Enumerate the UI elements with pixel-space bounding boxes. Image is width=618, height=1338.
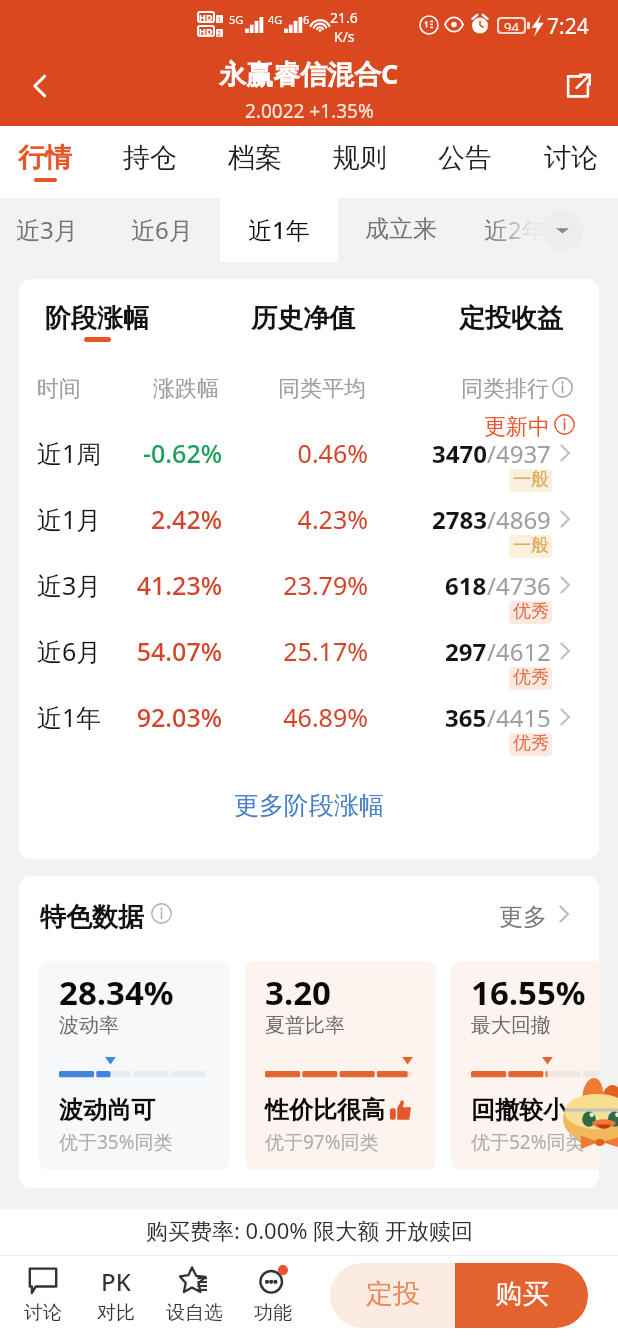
staticText: 近3月: [37, 568, 102, 602]
button[interactable]: 持仓: [100, 126, 200, 198]
staticText: /4736: [487, 569, 551, 602]
staticText: 永赢睿信混合C: [219, 55, 399, 92]
staticText: 购买: [495, 1277, 549, 1311]
staticText: 波动率: [59, 1013, 119, 1038]
staticText: /4937: [487, 437, 551, 470]
staticText: 2.0022 +1.35%: [245, 98, 374, 124]
staticText: HD: [199, 25, 213, 37]
staticText: 同类排行: [19, 375, 549, 403]
button[interactable]: 近1周: [19, 427, 599, 493]
staticText: 回撤较小: [471, 1095, 567, 1125]
button[interactable]: 规则: [310, 126, 410, 198]
button[interactable]: 更多: [489, 895, 579, 939]
button[interactable]: 阶段涨幅: [45, 293, 149, 343]
staticText: 94: [504, 19, 519, 31]
button[interactable]: 讨论: [521, 126, 618, 198]
button[interactable]: 16.55%: [451, 961, 599, 1170]
button[interactable]: 近3月: [0, 198, 102, 262]
button[interactable]: 讨论: [5, 1256, 81, 1338]
staticText: 优秀: [513, 667, 549, 689]
staticText: 更多阶段涨幅: [234, 790, 384, 821]
staticText: 2: [217, 29, 222, 37]
staticText: 4G: [268, 12, 283, 27]
button[interactable]: 定投: [330, 1263, 455, 1328]
staticText: 近1月: [37, 502, 102, 536]
staticText: 近6月: [37, 634, 102, 668]
button[interactable]: 购买: [455, 1263, 588, 1328]
staticText: 规则: [333, 141, 387, 175]
staticText: 一般: [513, 535, 549, 557]
button[interactable]: 成立来: [346, 198, 456, 262]
button[interactable]: 功能: [235, 1256, 311, 1338]
staticText: 设自选: [166, 1301, 223, 1325]
button[interactable]: 设自选: [156, 1256, 232, 1338]
staticText: 21.6: [330, 8, 358, 27]
staticText: 7:24: [547, 12, 589, 41]
staticText: 618: [445, 569, 487, 602]
staticText: 25.17%: [19, 634, 368, 668]
staticText: 41.23%: [19, 568, 222, 602]
button[interactable]: 近6月: [19, 625, 599, 691]
staticText: 近6月: [131, 213, 193, 246]
staticText: 297: [445, 635, 487, 668]
staticText: 6: [303, 12, 310, 27]
button[interactable]: 档案: [205, 126, 305, 198]
staticText: 2.42%: [19, 502, 222, 536]
staticText: 近2年: [484, 213, 546, 246]
staticText: 92.03%: [19, 700, 222, 734]
staticText: 讨论: [544, 141, 598, 175]
staticText: 优于52%同类: [471, 1129, 585, 1155]
staticText: 16.55%: [471, 970, 586, 1015]
staticText: 成立来: [365, 214, 437, 244]
staticText: 28.34%: [59, 970, 174, 1015]
staticText: 优于97%同类: [265, 1129, 379, 1155]
staticText: -0.62%: [19, 436, 222, 470]
button[interactable]: Back: [14, 60, 66, 112]
staticText: 54.07%: [19, 634, 222, 668]
button[interactable]: PK: [78, 1256, 154, 1338]
staticText: /4612: [487, 635, 551, 668]
staticText: 行情: [18, 141, 72, 175]
button[interactable]: 近1月: [19, 493, 599, 559]
staticText: 波动尚可: [59, 1095, 155, 1125]
staticText: PK: [101, 1265, 131, 1295]
staticText: 近1年: [248, 213, 310, 246]
button[interactable]: 近3月: [19, 559, 599, 625]
button[interactable]: 近6月: [107, 198, 217, 262]
button[interactable]: 3.20: [245, 961, 436, 1170]
staticText: 优秀: [513, 601, 549, 623]
staticText: 讨论: [24, 1301, 62, 1325]
button[interactable]: 历史净值: [251, 293, 355, 343]
staticText: 涨跌幅: [19, 375, 219, 403]
staticText: 同类平均: [19, 375, 366, 403]
button[interactable]: 近2年: [460, 198, 570, 262]
staticText: 特色数据: [40, 901, 144, 934]
staticText: 对比: [97, 1301, 135, 1325]
button[interactable]: Expand periods: [542, 210, 583, 251]
button[interactable]: 28.34%: [39, 961, 230, 1170]
staticText: 3470: [432, 437, 487, 470]
staticText: 性价比很高: [265, 1095, 385, 1125]
staticText: 功能: [254, 1301, 292, 1325]
staticText: 档案: [228, 141, 282, 175]
staticText: 0.46%: [19, 436, 368, 470]
button[interactable]: 近1年: [224, 198, 334, 262]
button[interactable]: 行情: [0, 126, 95, 198]
staticText: 阶段涨幅: [45, 302, 149, 335]
staticText: 5G: [229, 12, 244, 27]
button[interactable]: 公告: [415, 126, 515, 198]
staticText: 公告: [438, 141, 492, 175]
staticText: 时间: [37, 375, 81, 403]
button[interactable]: Share: [552, 60, 604, 112]
staticText: 购买费率: 0.00% 限大额 开放赎回: [146, 1215, 473, 1245]
staticText: 优秀: [513, 733, 549, 755]
staticText: 更多: [499, 902, 547, 932]
button[interactable]: 近1年: [19, 691, 599, 757]
staticText: 近3月: [16, 213, 78, 246]
staticText: 历史净值: [251, 302, 355, 335]
button[interactable]: 定投收益: [459, 293, 563, 343]
staticText: 46.89%: [19, 700, 368, 734]
staticText: 持仓: [123, 141, 177, 175]
button[interactable]: 更多阶段涨幅: [19, 784, 599, 826]
staticText: 365: [445, 701, 487, 734]
